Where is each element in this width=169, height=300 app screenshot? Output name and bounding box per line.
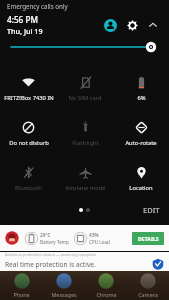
staticText: Auto-rotate bbox=[125, 139, 157, 147]
staticText: Messages bbox=[51, 291, 77, 298]
staticText: Real time protection is active. bbox=[5, 260, 96, 269]
staticText: Location bbox=[129, 184, 153, 192]
button[interactable]: Antivirus protection status — scanning c… bbox=[0, 252, 169, 271]
staticText: Do not disturb bbox=[9, 139, 49, 147]
staticText: Thu, Jul 19 bbox=[7, 26, 43, 36]
staticText: FRITZ!Box 7430 IN bbox=[4, 94, 54, 102]
button[interactable]: Settings bbox=[121, 14, 143, 36]
staticText: CPU Load bbox=[89, 239, 110, 245]
button[interactable]: EDIT bbox=[143, 205, 160, 215]
staticText: Bluetooth bbox=[15, 184, 42, 192]
staticText: Battery Temp bbox=[40, 239, 69, 245]
button[interactable]: Location bbox=[113, 156, 169, 201]
staticText: EDIT bbox=[143, 205, 160, 215]
button[interactable]: Flashlight bbox=[57, 111, 113, 156]
staticText: Phone bbox=[13, 291, 30, 298]
button[interactable]: FRITZ!Box 7430 IN bbox=[0, 66, 57, 111]
staticText: 6% bbox=[137, 94, 146, 102]
button[interactable]: Chrome bbox=[85, 271, 127, 300]
staticText: 43% bbox=[89, 232, 99, 239]
button[interactable]: Brightness bbox=[11, 38, 158, 56]
button[interactable]: DETAILS bbox=[132, 232, 164, 245]
button[interactable]: Camera bbox=[127, 271, 169, 300]
button[interactable]: Airplane mode bbox=[57, 156, 113, 201]
staticText: Flashlight bbox=[72, 139, 99, 147]
button[interactable]: Phone bbox=[0, 271, 43, 300]
staticText: 29°C bbox=[40, 232, 51, 239]
button[interactable]: Collapse bbox=[143, 15, 163, 35]
staticText: Emergency calls only bbox=[7, 2, 68, 10]
button[interactable]: 6% bbox=[113, 66, 169, 111]
button[interactable]: 29°C bbox=[0, 225, 169, 251]
staticText: Airplane mode bbox=[65, 184, 106, 192]
button[interactable]: Do not disturb bbox=[0, 111, 57, 156]
staticText: Antivirus protection status — scanning c… bbox=[5, 252, 97, 257]
button[interactable]: No SIM card bbox=[57, 66, 113, 111]
staticText: 4:56 PM bbox=[7, 14, 38, 25]
staticText: Camera bbox=[138, 291, 158, 298]
button[interactable]: Auto-rotate bbox=[113, 111, 169, 156]
button[interactable]: User account bbox=[99, 14, 121, 36]
staticText: No SIM card bbox=[68, 94, 102, 102]
button[interactable]: Bluetooth bbox=[0, 156, 57, 201]
staticText: Chrome bbox=[96, 291, 117, 298]
staticText: DETAILS bbox=[138, 235, 159, 242]
button[interactable]: Messages bbox=[43, 271, 85, 300]
